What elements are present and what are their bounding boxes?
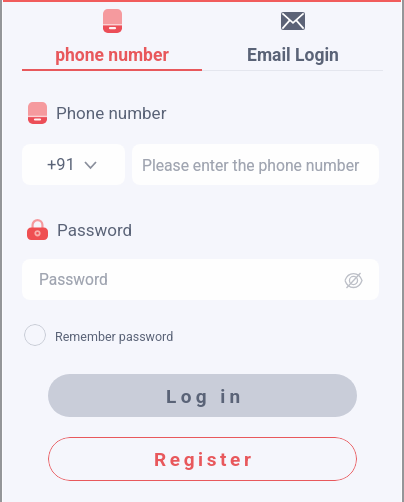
staticText: Phone number [56,103,167,123]
button[interactable]: Please enter the phone number [132,144,379,185]
button[interactable]: Register [48,437,357,481]
staticText: Remember password [55,329,174,344]
button[interactable]: Email Login [202,2,383,71]
button[interactable]: Log in [48,374,357,417]
staticText: Password [57,220,133,240]
staticText: Email Login [247,45,339,66]
staticText: Register [154,448,255,470]
staticText: phone number [55,45,169,66]
button[interactable]: Password [22,259,379,300]
staticText: Please enter the phone number [142,156,360,174]
staticText: Log in [166,385,245,407]
staticText: Password [39,271,108,289]
button[interactable]: phone number [22,2,202,71]
staticText: +91 [47,155,75,174]
button[interactable]: +91 [22,144,125,185]
button[interactable]: Remember password [24,322,174,348]
button[interactable]: Show password [340,267,366,293]
